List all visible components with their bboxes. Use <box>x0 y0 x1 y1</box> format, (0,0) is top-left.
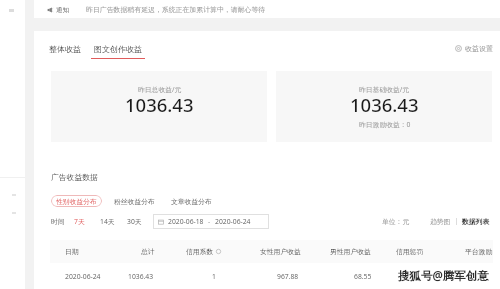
button[interactable]: 7天 <box>73 217 86 226</box>
button[interactable]: 趋势图 <box>430 217 451 226</box>
staticText: 2020-06-24 <box>65 272 128 281</box>
staticText: 信用惩罚 <box>396 247 465 256</box>
staticText: 搜狐号@腾军创意 <box>398 268 489 284</box>
staticText: - <box>208 217 211 226</box>
button[interactable]: 昨日总收益/元 <box>51 71 267 142</box>
staticText: 信用系数 <box>186 247 214 256</box>
staticText: 广告收益数据 <box>51 172 98 182</box>
staticText: 通知 <box>56 6 69 14</box>
staticText: 967.88 <box>277 272 354 281</box>
button[interactable]: 2020-06-18 <box>153 214 269 229</box>
button[interactable]: 数据列表 <box>462 217 490 226</box>
button[interactable]: 通知 <box>47 5 266 14</box>
button[interactable]: 收益设置 <box>455 44 500 59</box>
staticText: 平台激励 <box>465 247 493 256</box>
staticText: 68.55 <box>354 272 372 281</box>
button[interactable]: 广告收益数据 <box>51 172 98 182</box>
button[interactable]: 图文创作收益 <box>89 44 147 59</box>
staticText: 性别收益分布 <box>56 197 97 206</box>
staticText: 昨日基础收益/元 <box>359 85 410 94</box>
staticText: 趋势图 <box>430 217 451 226</box>
staticText: 1036.43 <box>350 92 419 117</box>
staticText: 昨日广告数据稍有延迟，系统正在加累计算中，请耐心等待 <box>86 5 266 14</box>
staticText: 总计 <box>141 247 186 256</box>
staticText: 图文创作收益 <box>94 44 142 54</box>
button[interactable]: 昨日基础收益/元 <box>276 71 492 142</box>
staticText: 男性用户收益 <box>330 247 396 256</box>
staticText: 日期 <box>65 247 141 256</box>
staticText: 女性用户收益 <box>260 247 330 256</box>
staticText: 昨日总收益/元 <box>138 85 182 94</box>
staticText: 1036.43 <box>128 272 212 281</box>
button[interactable]: 30天 <box>126 217 143 226</box>
staticText: 文章收益分布 <box>171 197 212 206</box>
button[interactable]: 2020-06-24 <box>50 263 493 289</box>
staticText: 2020-06-18 <box>168 217 204 226</box>
staticText: 1 <box>212 272 277 281</box>
staticText: 1036.43 <box>125 92 194 117</box>
button[interactable]: 整体收益 <box>45 44 85 59</box>
staticText: 昨日激励收益：0 <box>359 120 411 129</box>
staticText: 整体收益 <box>49 44 81 54</box>
staticText: 14天 <box>100 217 115 226</box>
staticText: 2020-06-24 <box>215 217 251 226</box>
button[interactable]: 文章收益分布 <box>170 197 213 206</box>
button[interactable]: 14天 <box>99 217 116 226</box>
staticText: 数据列表 <box>462 217 490 226</box>
staticText: 7天 <box>74 217 85 226</box>
staticText: 粉丝收益分布 <box>114 197 155 206</box>
staticText: 30天 <box>127 217 142 226</box>
staticText: 收益设置 <box>465 44 493 53</box>
staticText: 单位：元 <box>382 217 410 226</box>
staticText: 时间 <box>51 217 65 226</box>
button[interactable]: 性别收益分布 <box>51 195 102 207</box>
button[interactable]: 粉丝收益分布 <box>113 197 156 206</box>
